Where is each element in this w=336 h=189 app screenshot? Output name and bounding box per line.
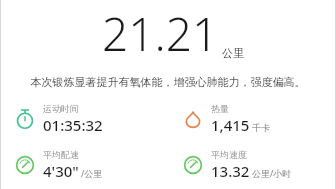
staticText: 平均配速 — [43, 149, 79, 160]
staticText: 13.32 — [211, 161, 250, 181]
staticText: /公里 — [81, 167, 103, 179]
button[interactable]: Average pace — [0, 149, 168, 181]
staticText: 本次锻炼显著提升有氧体能，增强心肺能力，强度偏高。 — [12, 75, 324, 89]
staticText: 4'30" — [43, 161, 79, 181]
other: Calories — [182, 108, 204, 130]
staticText: 1,415 — [211, 115, 250, 135]
staticText: 21.21 — [102, 2, 219, 65]
other: Average pace — [14, 154, 36, 176]
other: Average speed — [182, 154, 204, 176]
staticText: 公里 — [222, 46, 244, 60]
staticText: 公里/小时 — [252, 167, 292, 179]
button[interactable]: Average speed — [168, 149, 336, 181]
staticText: 千卡 — [252, 122, 270, 133]
staticText: 01:35:32 — [43, 115, 103, 135]
button[interactable]: Calories — [168, 103, 336, 135]
staticText: 热量 — [211, 103, 229, 114]
other: Duration — [14, 108, 36, 130]
button[interactable]: Duration — [0, 103, 168, 135]
staticText: 平均速度 — [211, 149, 247, 160]
staticText: 运动时间 — [43, 103, 79, 114]
